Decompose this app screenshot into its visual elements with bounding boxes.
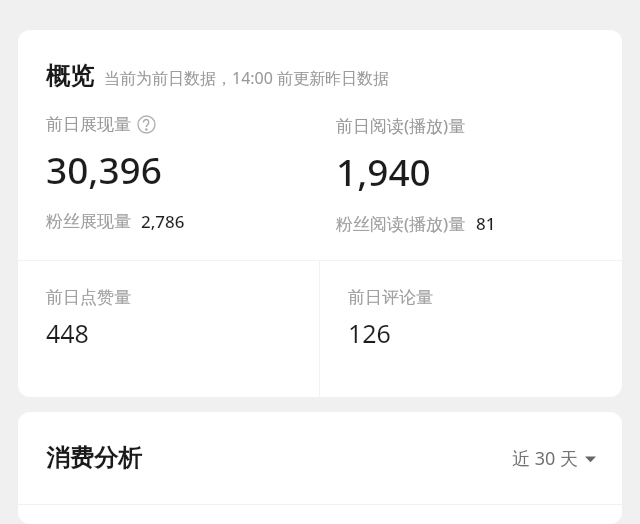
staticText: 81 [476,212,496,235]
staticText: 粉丝展现量 [46,211,131,232]
staticText: 近 30 天 [512,446,578,471]
staticText: 前日点赞量 [46,287,131,308]
staticText: 粉丝阅读(播放)量 [336,212,466,235]
staticText: 当前为前日数据，14:00 前更新昨日数据 [104,67,390,89]
button[interactable]: 前日展现量 [46,114,320,233]
staticText: 2,786 [141,210,185,233]
staticText: 448 [46,316,89,350]
staticText: 消费分析 [46,443,142,473]
button[interactable]: 近 30 天 [510,442,598,475]
button[interactable]: 说明 [137,115,156,134]
button[interactable]: 前日阅读(播放)量 [336,114,622,235]
staticText: 前日阅读(播放)量 [336,114,466,137]
staticText: 126 [348,316,391,350]
staticText: 30,396 [46,144,162,194]
staticText: 1,940 [336,146,431,196]
staticText: 前日展现量 [46,114,131,135]
staticText: 前日评论量 [348,287,433,308]
button[interactable]: 前日评论量 [320,261,622,397]
button[interactable]: 前日点赞量 [18,261,319,397]
staticText: 概览 [46,61,94,91]
